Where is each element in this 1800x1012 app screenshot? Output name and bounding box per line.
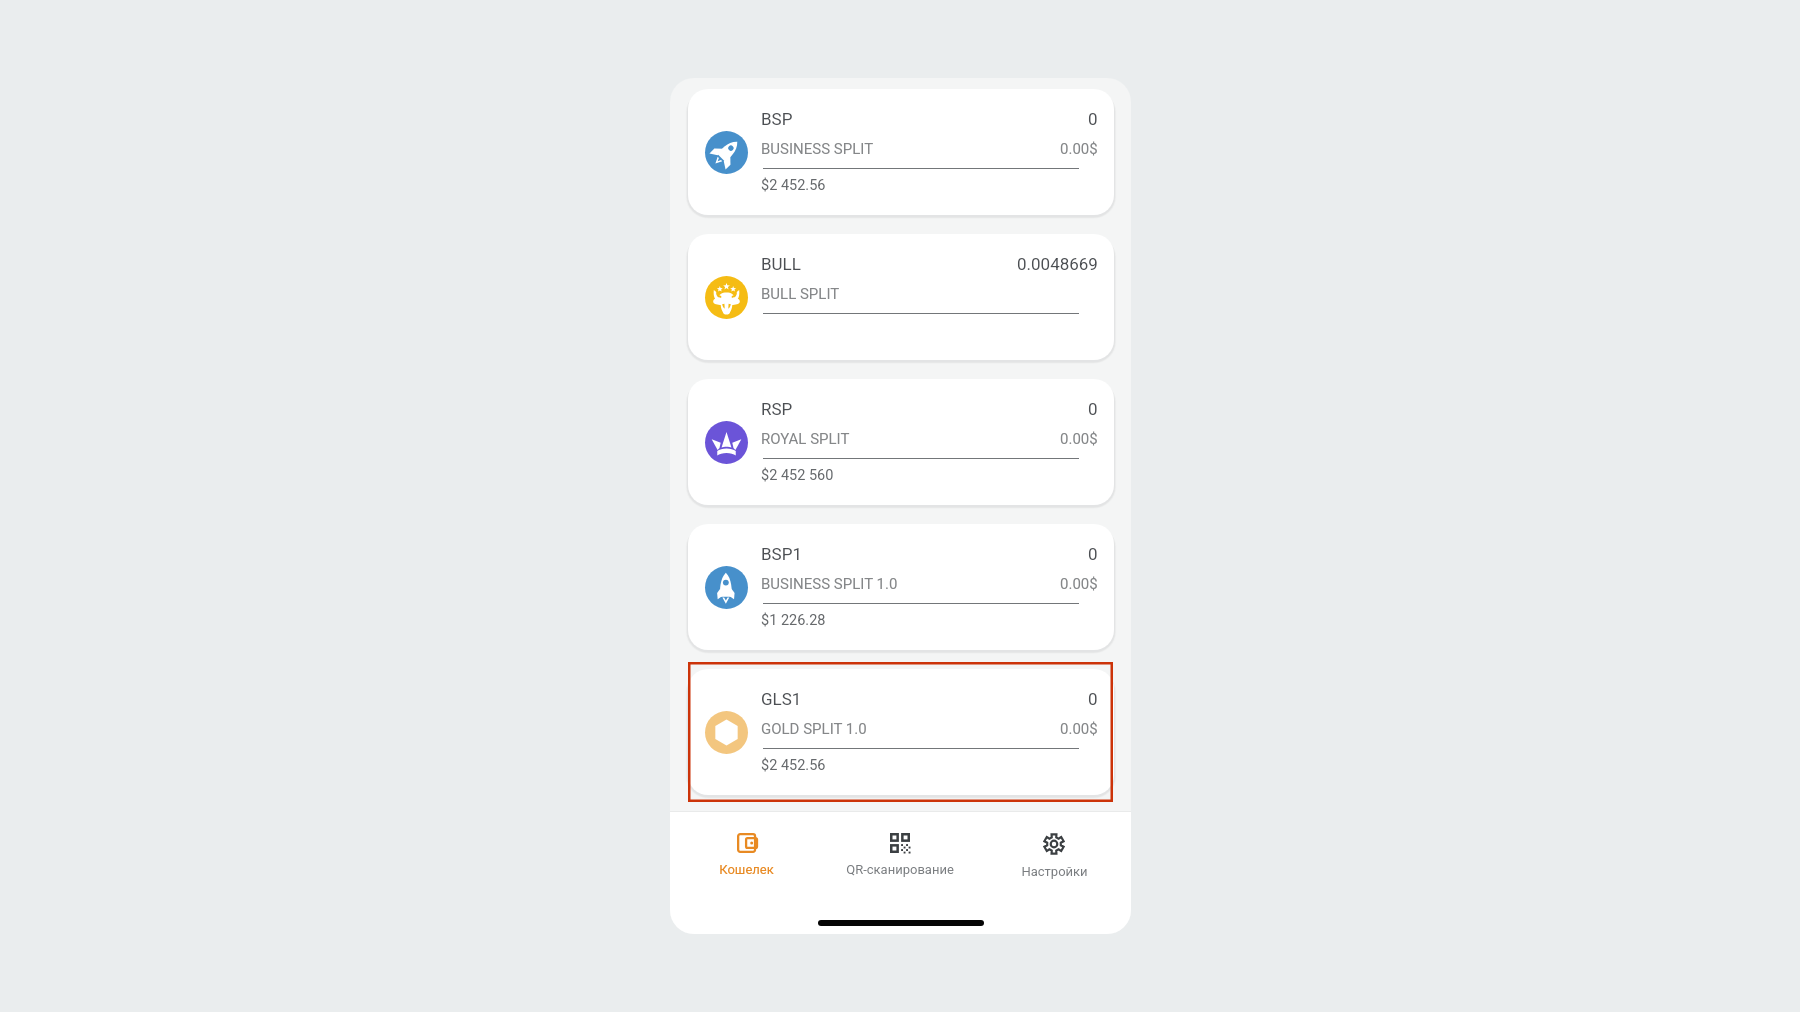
other: Settings [1043,833,1065,855]
staticText: 0 [1088,544,1098,564]
staticText: 0.00$ [1060,720,1098,738]
staticText: BSP1 [761,544,802,564]
staticText: Кошелек [719,862,774,877]
staticText: 0 [1088,109,1098,129]
staticText: $2 452.56 [761,177,826,194]
staticText: 0.0048669 [1017,254,1098,274]
staticText: $1 226.28 [761,612,826,629]
button[interactable]: BULL [688,234,1114,360]
staticText: ROYAL SPLIT [761,430,850,448]
staticText: BUSINESS SPLIT 1.0 [761,575,898,593]
other: Wallet [737,833,757,853]
button[interactable]: BSP [688,89,1114,215]
staticText: 0 [1088,399,1098,419]
staticText: BSP [761,109,793,129]
staticText: BULL [761,254,801,274]
button[interactable]: Wallet [670,812,823,902]
staticText: $2 452 560 [761,467,834,484]
button[interactable]: QR scan [823,812,977,902]
staticText: BULL SPLIT [761,285,840,303]
staticText: 0 [1088,689,1098,709]
button[interactable]: Settings [977,812,1131,902]
staticText: QR-сканирование [846,862,954,877]
staticText: GLS1 [761,689,802,709]
staticText: 0.00$ [1060,140,1098,158]
staticText: 0.00$ [1060,430,1098,448]
staticText: Настройки [1021,864,1088,879]
button[interactable]: BSP1 [688,524,1114,650]
other: QR scan [890,833,910,853]
staticText: RSP [761,399,793,419]
staticText: $2 452.56 [761,757,826,774]
button[interactable]: GLS1 [688,669,1114,795]
staticText: 0.00$ [1060,575,1098,593]
staticText: GOLD SPLIT 1.0 [761,720,867,738]
button[interactable]: RSP [688,379,1114,505]
staticText: BUSINESS SPLIT [761,140,874,158]
